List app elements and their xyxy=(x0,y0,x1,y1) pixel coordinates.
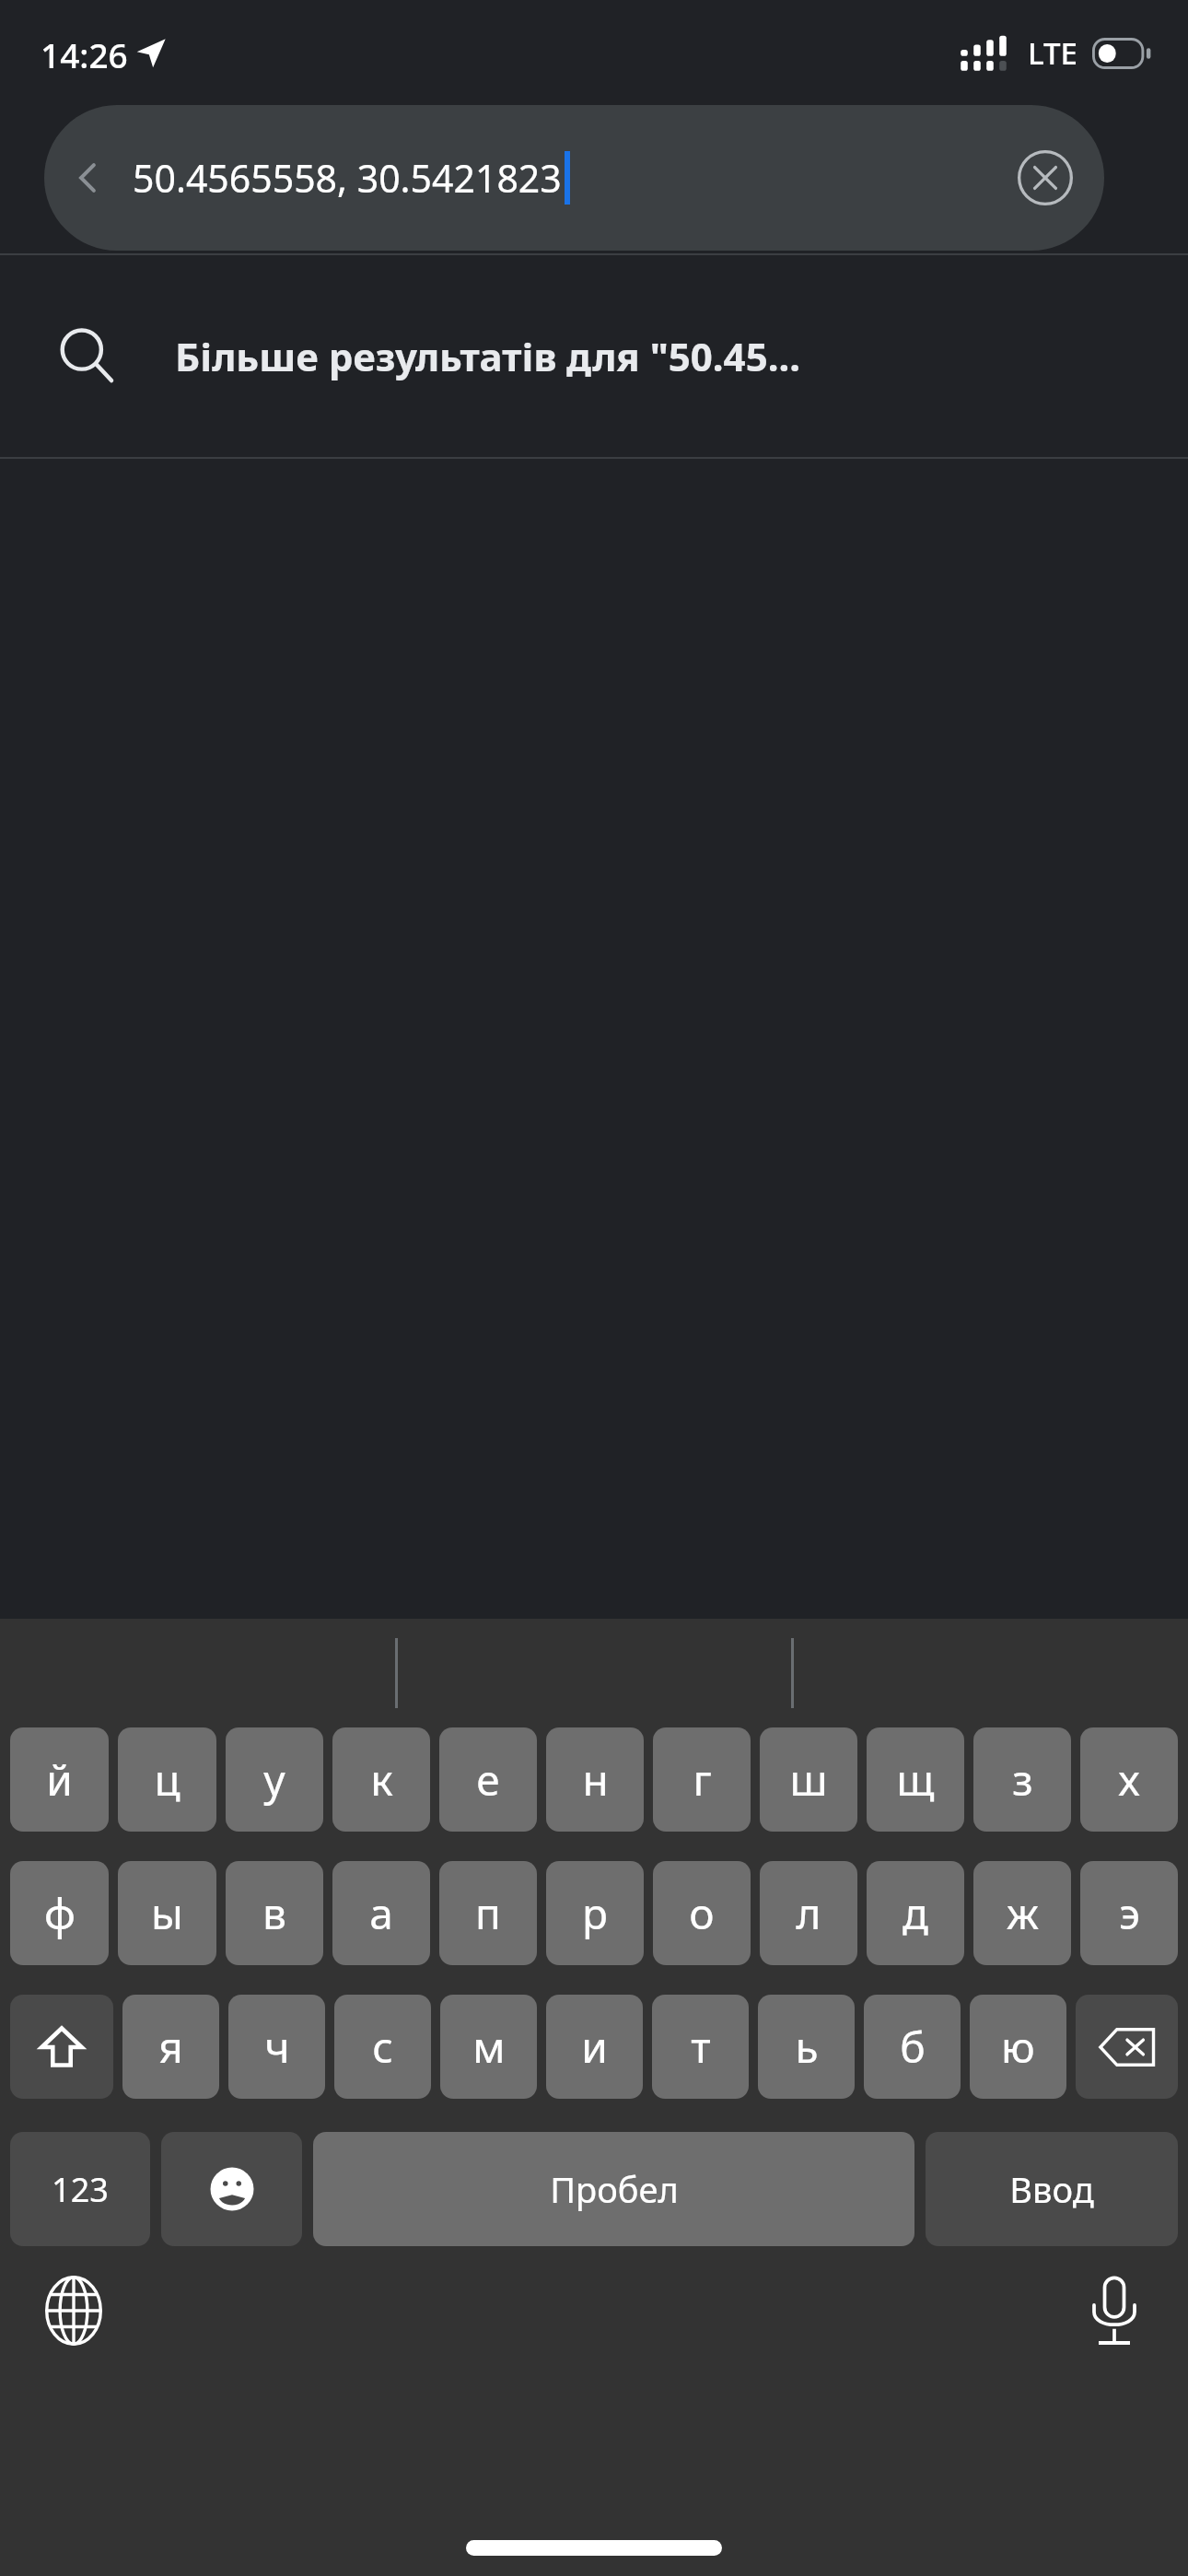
staticText: и xyxy=(581,2018,608,2076)
button[interactable]: о xyxy=(653,1861,751,1965)
staticText: ц xyxy=(154,1751,181,1809)
staticText: б xyxy=(900,2018,926,2076)
button[interactable]: у xyxy=(226,1727,323,1832)
staticText: ч xyxy=(264,2018,290,2076)
button[interactable]: Більше результатів для "50.45... xyxy=(0,255,1188,457)
button[interactable]: з xyxy=(973,1727,1071,1832)
staticText: ш xyxy=(789,1751,828,1809)
button[interactable]: е xyxy=(439,1727,537,1832)
button[interactable]: Change keyboard language xyxy=(29,2266,118,2355)
staticText: о xyxy=(689,1884,715,1942)
staticText: г xyxy=(693,1751,712,1809)
staticText: а xyxy=(369,1884,393,1942)
staticText: з xyxy=(1012,1751,1033,1809)
button[interactable]: с xyxy=(334,1995,431,2099)
staticText: Більше результатів для "50.45... xyxy=(175,330,801,382)
button[interactable]: и xyxy=(546,1995,643,2099)
staticText: м xyxy=(472,2018,506,2076)
staticText: к xyxy=(370,1751,393,1809)
staticText: Ввод xyxy=(1009,2165,1094,2213)
staticText: щ xyxy=(896,1751,935,1809)
staticText: у xyxy=(263,1751,285,1809)
button[interactable]: щ xyxy=(867,1727,964,1832)
button[interactable]: х xyxy=(1080,1727,1178,1832)
button[interactable]: ж xyxy=(973,1861,1071,1965)
button[interactable]: Voice input xyxy=(1070,2266,1159,2355)
staticText: д xyxy=(903,1884,928,1942)
staticText: е xyxy=(476,1751,500,1809)
button[interactable]: д xyxy=(867,1861,964,1965)
button[interactable]: ю xyxy=(970,1995,1066,2099)
button[interactable]: ш xyxy=(760,1727,857,1832)
staticText: с xyxy=(372,2018,393,2076)
button[interactable]: э xyxy=(1080,1861,1178,1965)
button[interactable]: н xyxy=(546,1727,644,1832)
staticText: ы xyxy=(151,1884,183,1942)
button[interactable]: к xyxy=(332,1727,430,1832)
staticText: й xyxy=(46,1751,73,1809)
staticText: л xyxy=(796,1884,821,1942)
staticText: э xyxy=(1119,1884,1140,1942)
button[interactable]: м xyxy=(440,1995,537,2099)
button[interactable]: Back xyxy=(44,105,1104,251)
button[interactable]: Пробел xyxy=(313,2132,914,2246)
staticText: ь xyxy=(795,2018,819,2076)
button[interactable]: Ввод xyxy=(926,2132,1178,2246)
button[interactable]: л xyxy=(760,1861,857,1965)
button[interactable]: Shift xyxy=(10,1995,113,2099)
staticText: т xyxy=(691,2018,711,2076)
staticText: 123 xyxy=(52,2167,109,2212)
staticText: х xyxy=(1118,1751,1140,1809)
button[interactable]: в xyxy=(226,1861,323,1965)
staticText: Пробел xyxy=(550,2165,679,2213)
button[interactable]: ь xyxy=(758,1995,855,2099)
staticText: ф xyxy=(44,1884,76,1942)
button[interactable]: г xyxy=(653,1727,751,1832)
button[interactable]: я xyxy=(122,1995,219,2099)
button[interactable]: 123 xyxy=(10,2132,150,2246)
staticText: п xyxy=(475,1884,501,1942)
button[interactable]: Emoji xyxy=(161,2132,302,2246)
staticText: р xyxy=(582,1884,608,1942)
button[interactable]: ч xyxy=(228,1995,325,2099)
staticText: 14:26 xyxy=(41,31,128,77)
button[interactable]: б xyxy=(864,1995,961,2099)
staticText: в xyxy=(262,1884,286,1942)
button[interactable]: й xyxy=(10,1727,109,1832)
staticText: 50.4565558, 30.5421823 xyxy=(133,152,562,204)
button[interactable]: ы xyxy=(118,1861,216,1965)
staticText: н xyxy=(582,1751,609,1809)
button[interactable]: ц xyxy=(118,1727,216,1832)
button[interactable]: Back xyxy=(44,105,133,251)
button[interactable]: ф xyxy=(10,1861,109,1965)
button[interactable]: т xyxy=(652,1995,749,2099)
button[interactable]: а xyxy=(332,1861,430,1965)
staticText: ю xyxy=(1001,2018,1035,2076)
staticText: LTE xyxy=(1028,32,1077,74)
staticText: ж xyxy=(1007,1884,1039,1942)
button[interactable]: р xyxy=(546,1861,644,1965)
button[interactable]: п xyxy=(439,1861,537,1965)
button[interactable]: Backspace xyxy=(1076,1995,1178,2099)
staticText: я xyxy=(158,2018,183,2076)
button[interactable]: Clear text xyxy=(986,105,1104,251)
